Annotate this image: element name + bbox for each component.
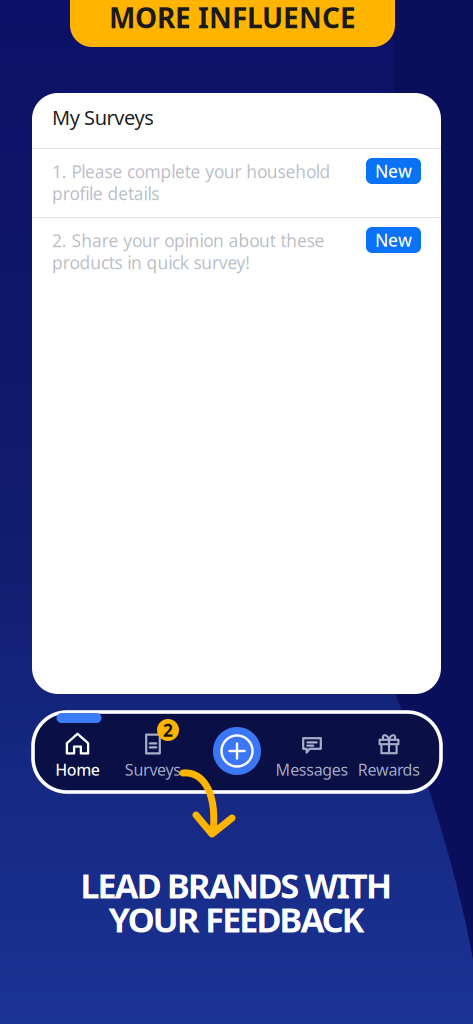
staticText: products in quick survey! [52,251,250,274]
button[interactable]: Home [36,732,118,794]
staticText: New [375,228,412,251]
staticText: 1. Please complete your household [52,160,331,183]
button[interactable]: 2. Share your opinion about these [32,218,441,286]
staticText: profile details [52,182,159,205]
button[interactable]: Messages [271,732,353,794]
button[interactable]: New survey [213,727,261,775]
button[interactable]: Rewards [348,732,430,794]
staticText: 2. Share your opinion about these [52,229,325,252]
staticText: New [375,159,412,182]
staticText: YOUR FEEDBACK [108,896,365,942]
staticText: Messages [276,759,348,780]
button[interactable]: 1. Please complete your household [32,149,441,217]
button[interactable]: Surveys [112,732,194,794]
staticText: My Surveys [52,104,154,131]
staticText: Surveys [125,759,181,780]
staticText: Rewards [358,759,420,780]
staticText: LEAD BRANDS WITH [80,862,393,908]
staticText: Home [55,759,100,780]
staticText: 2 [163,718,173,741]
staticText: MORE INFLUENCE [109,0,356,36]
